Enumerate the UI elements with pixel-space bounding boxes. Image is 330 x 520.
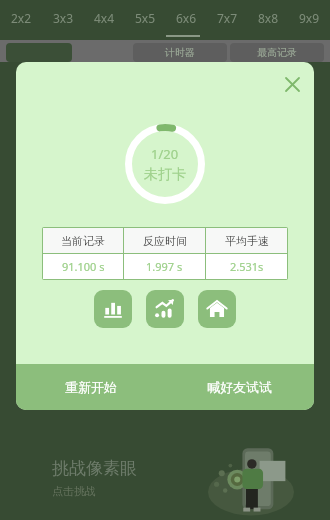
staticText: 2.531s (230, 259, 264, 274)
button[interactable]: 7x7 (207, 0, 248, 36)
button[interactable]: Close (278, 70, 306, 98)
button[interactable]: 6x6 (166, 0, 207, 36)
staticText: 喊好友试试 (207, 379, 272, 395)
button[interactable]: 8x8 (248, 0, 289, 36)
button[interactable]: 2x2 (0, 0, 42, 36)
button[interactable]: 4x4 (84, 0, 125, 36)
staticText: 重新开始 (65, 379, 117, 395)
staticText: 2x2 (11, 10, 32, 26)
button[interactable]: Trends (146, 290, 184, 328)
staticText: 3x3 (53, 10, 74, 26)
button[interactable]: Statistics (94, 290, 132, 328)
button[interactable]: 5x5 (125, 0, 166, 36)
staticText: 7x7 (217, 10, 238, 26)
button[interactable]: 9x9 (289, 0, 330, 36)
button[interactable]: 重新开始 (16, 364, 165, 410)
staticText: 点击挑战 (52, 484, 96, 498)
button[interactable]: 喊好友试试 (165, 364, 314, 410)
staticText: 反应时间 (143, 234, 187, 248)
staticText: 1/20 (151, 145, 179, 163)
staticText: 5x5 (135, 10, 156, 26)
staticText: 挑战像素眼 (52, 458, 137, 479)
staticText: 未打卡 (144, 166, 186, 184)
staticText: 计时器 (165, 46, 195, 59)
staticText: 1.997 s (146, 259, 183, 274)
staticText: 平均手速 (225, 234, 269, 248)
staticText: 当前记录 (61, 234, 105, 248)
button[interactable]: 3x3 (42, 0, 84, 36)
staticText: 91.100 s (62, 259, 105, 274)
staticText: 6x6 (176, 10, 197, 26)
button[interactable]: Home (198, 290, 236, 328)
staticText: 4x4 (94, 10, 115, 26)
staticText: 8x8 (258, 10, 279, 26)
staticText: 9x9 (299, 10, 320, 26)
staticText: 最高记录 (257, 46, 297, 59)
